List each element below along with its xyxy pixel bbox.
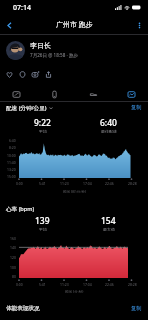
- staticText: 6:40: [100, 117, 117, 129]
- button[interactable]: Splits: [47, 87, 61, 101]
- staticText: 体能表现状况: [6, 305, 40, 312]
- staticText: 平均: [39, 129, 47, 133]
- staticText: 8:20: [9, 145, 16, 150]
- staticText: 6:40: [9, 138, 16, 143]
- staticText: 李日长: [30, 41, 51, 50]
- staticText: 22:46: [105, 181, 114, 186]
- button[interactable]: Map: [9, 87, 23, 101]
- button[interactable]: Comment: [16, 68, 29, 81]
- staticText: 5:41: [39, 181, 46, 186]
- staticText: 复制: [131, 104, 142, 111]
- staticText: 0:00: [16, 181, 23, 186]
- button[interactable]: Back: [0, 16, 18, 34]
- staticText: 9:22: [34, 117, 51, 129]
- staticText: 时间 (分:秒): [65, 289, 84, 294]
- staticText: 复制: [131, 305, 142, 312]
- staticText: 17:04: [83, 282, 92, 287]
- button[interactable]: 复制: [131, 305, 142, 312]
- staticText: 07:14: [13, 3, 31, 13]
- staticText: 最大值: [103, 227, 115, 231]
- button[interactable]: Photo: [29, 68, 42, 81]
- staticText: 80: [12, 274, 16, 279]
- staticText: 7月26日 @ 18:58 · 跑步: [30, 52, 79, 58]
- staticText: 心率 (bpm): [6, 205, 35, 213]
- staticText: 17:04: [83, 181, 92, 186]
- button[interactable]: Profile photo: [6, 41, 25, 60]
- staticText: 0:00: [16, 282, 23, 287]
- staticText: 28:28: [128, 282, 137, 287]
- staticText: 11:40: [7, 160, 16, 165]
- button[interactable]: 复制: [131, 104, 142, 111]
- staticText: 100: [10, 265, 16, 270]
- staticText: 139: [35, 215, 50, 227]
- staticText: 22:46: [105, 282, 114, 287]
- staticText: 11:23: [60, 181, 69, 186]
- button[interactable]: Gear: [86, 87, 100, 101]
- button[interactable]: Share: [42, 68, 55, 81]
- staticText: 120: [10, 255, 16, 260]
- staticText: 11:23: [60, 282, 69, 287]
- button[interactable]: Like: [3, 68, 16, 81]
- staticText: 15:00: [7, 174, 16, 179]
- button[interactable]: Charts: [124, 87, 138, 101]
- staticText: 140: [10, 245, 16, 250]
- staticText: 160: [10, 236, 16, 241]
- staticText: 154: [101, 215, 116, 227]
- staticText: 平均: [39, 227, 47, 231]
- staticText: 广州市 跑步: [56, 20, 93, 30]
- staticText: 时间 (时:分:秒): [63, 189, 86, 194]
- staticText: 5:41: [39, 282, 46, 287]
- staticText: 10:00: [7, 153, 16, 158]
- staticText: 28:28: [128, 181, 137, 186]
- button[interactable]: More options: [130, 16, 148, 34]
- staticText: 最佳配速: [101, 129, 117, 133]
- staticText: 配速 (分钟/公里): [6, 104, 47, 112]
- staticText: 13:20: [7, 167, 16, 172]
